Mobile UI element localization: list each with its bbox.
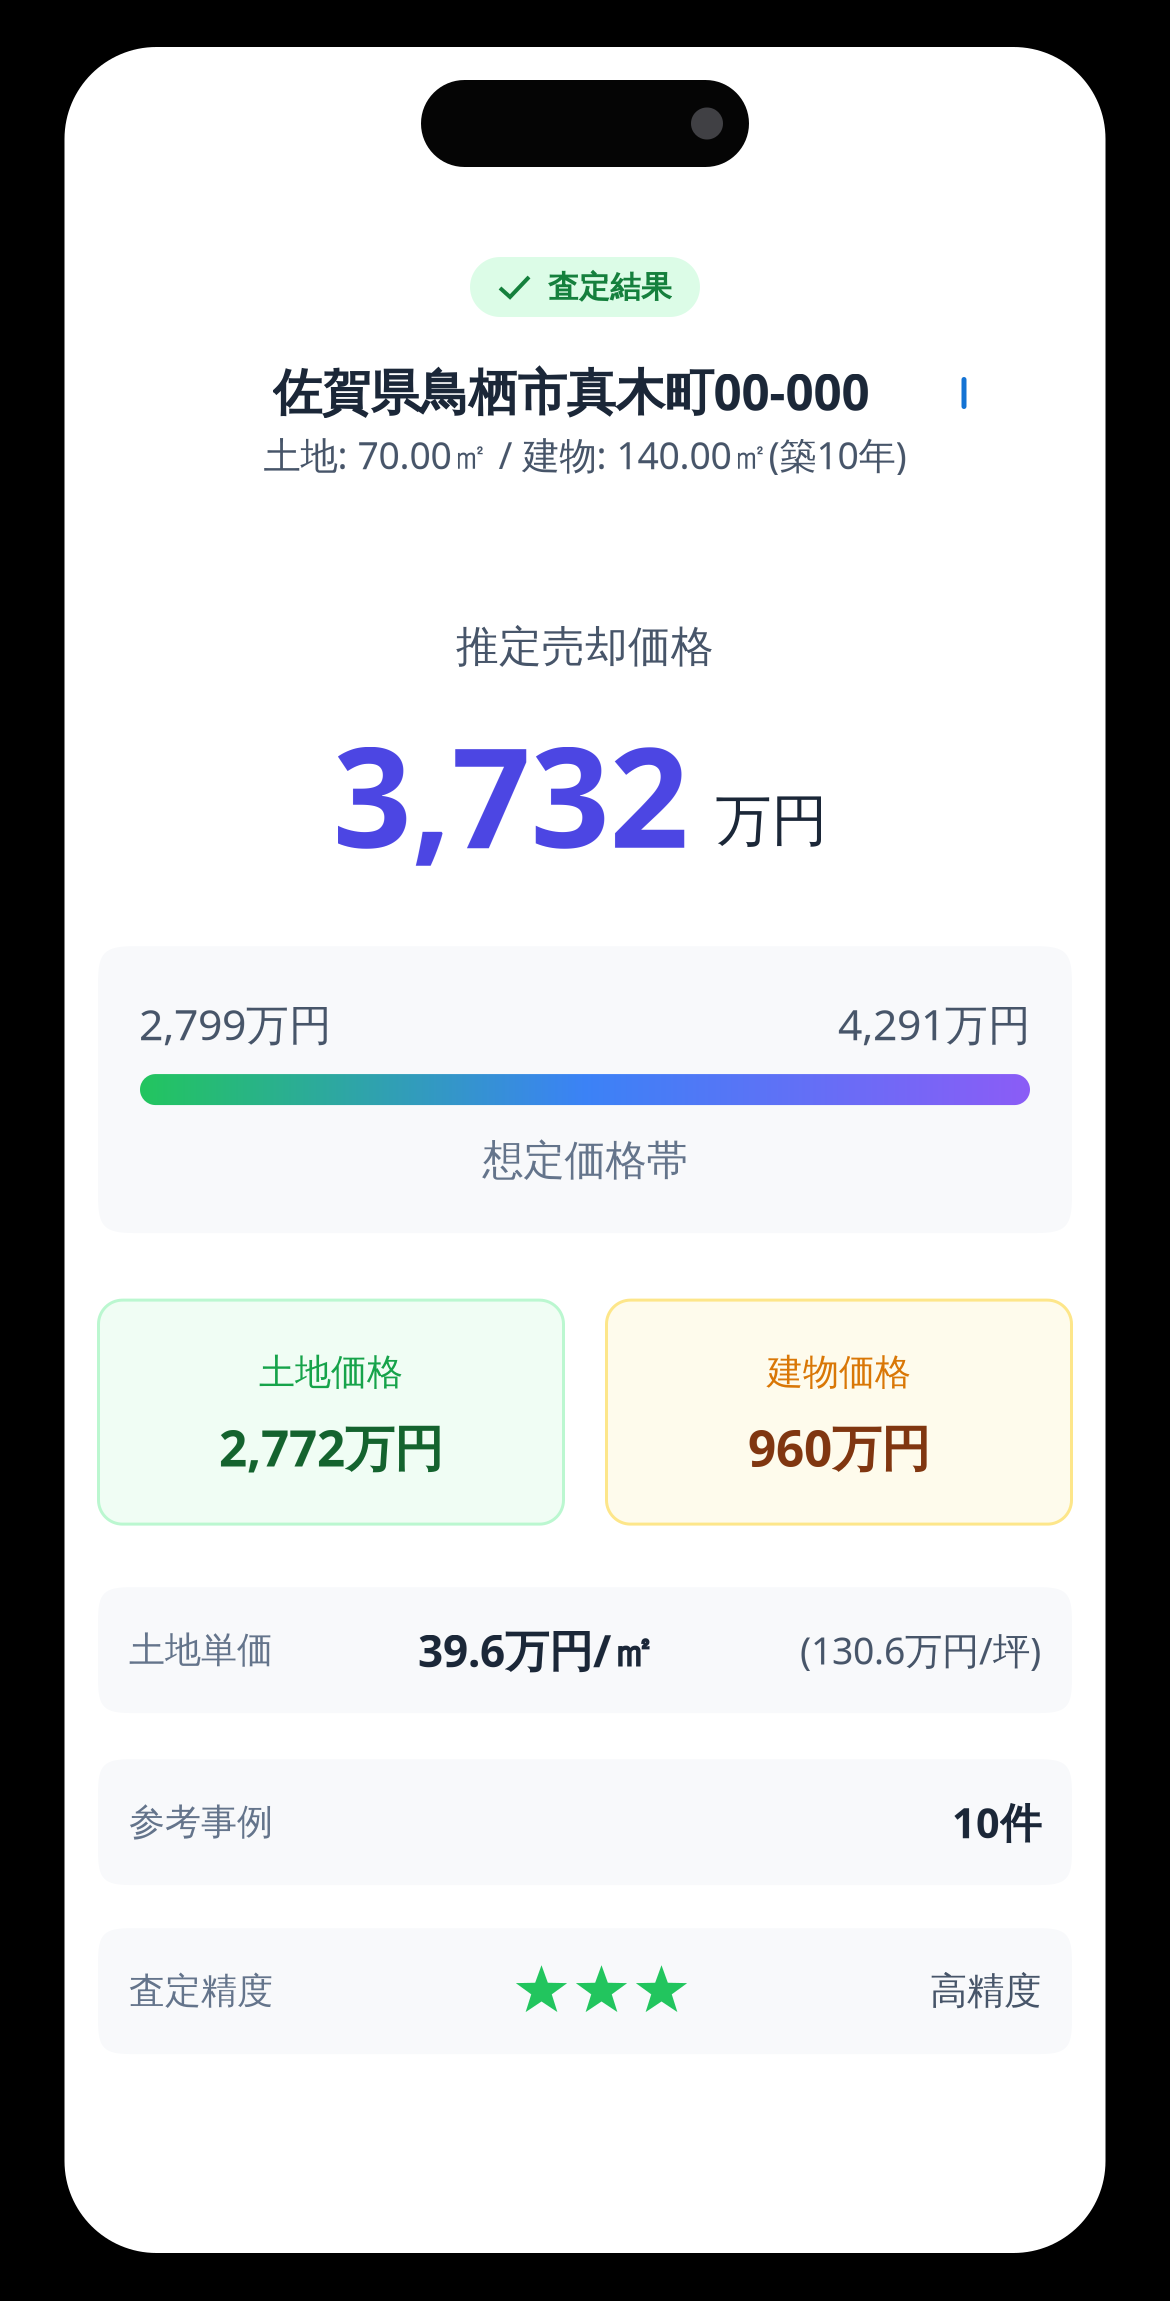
staticText: (130.6万円/坪): [800, 1625, 1041, 1675]
staticText: 高精度: [930, 1968, 1041, 2014]
staticText: 土地価格: [259, 1350, 403, 1394]
button[interactable]: 参考事例: [98, 1759, 1072, 1885]
staticText: 3,732: [332, 702, 688, 886]
staticText: 10件: [952, 1795, 1041, 1850]
button[interactable]: 土地価格: [98, 1300, 563, 1524]
staticText: 土地: 70.00㎡ / 建物: 140.00㎡(築10年): [263, 430, 906, 480]
staticText: 佐賀県鳥栖市真木町00-000: [272, 358, 869, 424]
button[interactable]: 査定結果: [470, 257, 700, 317]
staticText: 建物価格: [767, 1350, 911, 1394]
staticText: 査定精度: [129, 1969, 273, 2013]
button[interactable]: 土地単価: [98, 1587, 1072, 1713]
button[interactable]: 査定精度: [98, 1928, 1072, 2054]
staticText: 土地単価: [129, 1628, 273, 1672]
staticText: 2,772万円: [219, 1414, 443, 1480]
staticText: 2,799万円: [139, 995, 332, 1052]
staticText: 想定価格帯: [482, 1135, 687, 1186]
staticText: 39.6万円/㎡: [418, 1621, 655, 1679]
staticText: 参考事例: [129, 1800, 273, 1844]
staticText: 960万円: [748, 1414, 930, 1480]
staticText: 万円: [715, 786, 827, 855]
button[interactable]: 建物価格: [606, 1300, 1071, 1524]
staticText: 推定売却価格: [456, 621, 714, 673]
staticText: 査定結果: [548, 268, 672, 306]
staticText: 4,291万円: [838, 995, 1031, 1052]
